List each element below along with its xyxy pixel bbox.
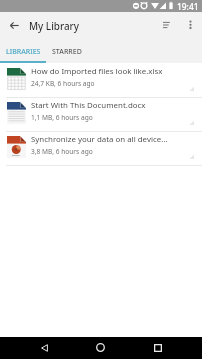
button[interactable]: STARRED	[46, 38, 88, 63]
button[interactable]: Start With This Document.docx	[0, 97, 202, 131]
button[interactable]: Synchronize your data on all device…	[0, 131, 202, 165]
button[interactable]: More options	[179, 14, 201, 36]
staticText: 24,7 KB, 6 hours ago	[31, 79, 95, 88]
staticText: Synchronize your data on all device…	[31, 134, 168, 145]
staticText: My Library	[29, 19, 80, 32]
button[interactable]: How do Imported files look like.xlsx	[0, 63, 202, 97]
button[interactable]: Back	[34, 337, 55, 358]
staticText: 3,8 MB, 6 hours ago	[31, 147, 93, 156]
button[interactable]: Recent apps	[147, 337, 168, 358]
staticText: Start With This Document.docx	[31, 100, 146, 111]
button[interactable]: Navigate up	[2, 13, 26, 37]
button[interactable]: LIBRARIES	[0, 38, 46, 63]
staticText: 19:41	[177, 1, 199, 12]
button[interactable]: Sort	[155, 14, 177, 36]
staticText: How do Imported files look like.xlsx	[31, 66, 163, 77]
staticText: 1,1 MB, 6 hours ago	[31, 113, 93, 122]
staticText: LIBRARIES	[6, 47, 41, 57]
button[interactable]: Home	[90, 337, 111, 358]
staticText: STARRED	[52, 47, 82, 57]
